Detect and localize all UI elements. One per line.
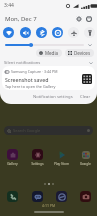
staticText: Settings <box>31 162 44 166</box>
button[interactable]: Clear <box>78 93 93 101</box>
button[interactable]: Power <box>84 14 94 24</box>
staticText: Gallery <box>7 162 18 166</box>
button[interactable]: Media <box>36 49 62 57</box>
button[interactable]: Search <box>4 126 93 135</box>
button[interactable]: Brightness <box>5 42 84 47</box>
button[interactable]: Expand brightness <box>86 41 93 48</box>
button[interactable]: Do not disturb <box>52 27 63 38</box>
staticText: 4:11 PM <box>42 203 56 208</box>
button[interactable]: Camera <box>80 191 91 202</box>
button[interactable]: Samsung Capture · 3:44 PM <box>2 66 95 90</box>
staticText: Tap here to open the Gallery <box>5 84 56 89</box>
staticText: Search Google <box>13 128 41 133</box>
button[interactable]: Internet <box>56 191 67 202</box>
button[interactable]: Play Store <box>56 149 67 160</box>
button[interactable]: Settings <box>74 14 84 24</box>
staticText: Samsung Capture · 3:44 PM <box>11 69 58 74</box>
staticText: Clear <box>80 94 91 100</box>
button[interactable]: Phone <box>7 191 18 202</box>
button[interactable]: Mute <box>20 27 31 38</box>
staticText: Media <box>45 50 59 56</box>
button[interactable]: Settings <box>32 149 43 160</box>
staticText: Notification settings <box>33 94 73 100</box>
button[interactable]: Wi-Fi <box>3 27 14 38</box>
staticText: Mon, Dec 7 <box>5 15 37 23</box>
staticText: 3:44 <box>4 2 14 9</box>
staticText: Google <box>80 162 91 166</box>
button[interactable]: Notification settings <box>31 93 75 101</box>
button[interactable]: Collapse <box>88 60 94 66</box>
button[interactable]: Gallery <box>7 149 18 160</box>
staticText: Screenshot saved <box>5 76 49 83</box>
button[interactable]: Google <box>80 149 91 160</box>
button[interactable]: Devices <box>65 49 94 57</box>
staticText: Devices <box>74 50 91 56</box>
staticText: Play Store <box>54 162 69 166</box>
button[interactable]: Bluetooth <box>36 27 47 38</box>
button[interactable]: Airplane mode <box>68 27 79 38</box>
staticText: Silent notifications <box>4 60 41 66</box>
button[interactable]: Flashlight <box>84 27 95 38</box>
button[interactable]: Messages <box>32 191 43 202</box>
